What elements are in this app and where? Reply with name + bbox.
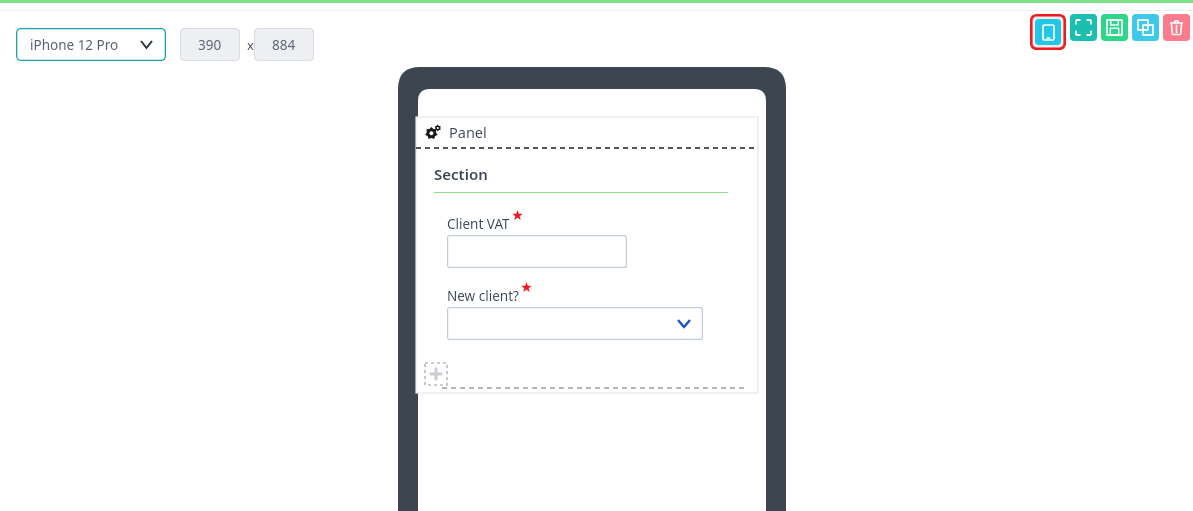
staticText: x bbox=[247, 36, 254, 54]
button[interactable] bbox=[447, 307, 703, 340]
button[interactable]: Phone preview bbox=[1030, 14, 1066, 50]
button[interactable]: 884 bbox=[254, 28, 314, 61]
button[interactable]: Panel bbox=[416, 117, 758, 147]
button[interactable]: Move element bbox=[425, 363, 447, 385]
button[interactable]: Delete bbox=[1163, 14, 1190, 41]
button[interactable]: 390 bbox=[180, 28, 240, 61]
button[interactable]: iPhone 12 Pro bbox=[16, 28, 166, 61]
button[interactable] bbox=[447, 235, 627, 268]
staticText: New client? bbox=[447, 287, 519, 305]
button[interactable]: Fullscreen bbox=[1070, 14, 1097, 41]
staticText: iPhone 12 Pro bbox=[30, 36, 119, 54]
staticText: 390 bbox=[198, 36, 222, 54]
button[interactable]: Save bbox=[1101, 14, 1128, 41]
staticText: Client VAT bbox=[447, 215, 510, 233]
button[interactable]: Section bbox=[434, 164, 488, 184]
button[interactable]: Duplicate bbox=[1132, 14, 1159, 41]
staticText: Panel bbox=[449, 122, 487, 142]
staticText: 884 bbox=[272, 36, 296, 54]
